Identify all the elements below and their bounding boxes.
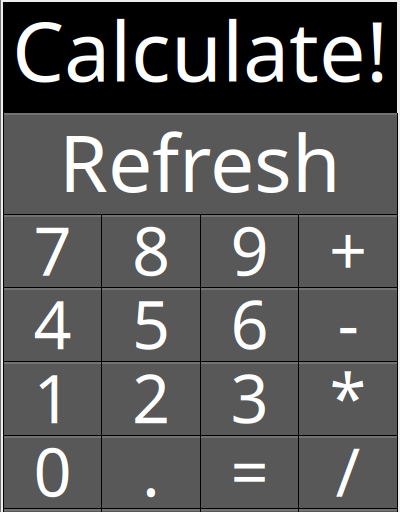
button[interactable]: 5 bbox=[102, 290, 200, 361]
staticText: / bbox=[335, 427, 360, 512]
staticText: 5 bbox=[132, 279, 170, 368]
button[interactable]: 7 bbox=[4, 217, 101, 287]
staticText: 3 bbox=[230, 353, 268, 442]
button[interactable]: = bbox=[201, 438, 298, 508]
button[interactable]: * bbox=[299, 364, 397, 435]
staticText: - bbox=[337, 279, 358, 368]
button[interactable]: - bbox=[299, 290, 397, 361]
button[interactable]: 9 bbox=[201, 217, 298, 287]
button[interactable]: 4 bbox=[4, 290, 101, 361]
button[interactable]: 0 bbox=[4, 438, 101, 508]
staticText: 4 bbox=[33, 279, 71, 368]
staticText: = bbox=[230, 427, 268, 512]
button[interactable]: / bbox=[299, 438, 397, 508]
button[interactable]: 3 bbox=[201, 364, 298, 435]
staticText: + bbox=[329, 206, 367, 294]
button[interactable]: 6 bbox=[201, 290, 298, 361]
staticText: 1 bbox=[33, 353, 71, 442]
button[interactable]: 1 bbox=[4, 364, 101, 435]
button[interactable]: 8 bbox=[102, 217, 200, 287]
staticText: 7 bbox=[33, 206, 71, 294]
staticText: Calculate! bbox=[12, 0, 388, 104]
staticText: . bbox=[142, 427, 160, 512]
button[interactable]: . bbox=[102, 438, 200, 508]
button[interactable]: + bbox=[299, 217, 397, 287]
staticText: 0 bbox=[33, 427, 71, 512]
staticText: 9 bbox=[230, 206, 268, 294]
staticText: * bbox=[329, 353, 366, 442]
staticText: 8 bbox=[132, 206, 170, 294]
staticText: 2 bbox=[132, 353, 170, 442]
button[interactable]: 2 bbox=[102, 364, 200, 435]
staticText: 6 bbox=[230, 279, 268, 368]
button[interactable]: Refresh bbox=[3, 113, 397, 214]
staticText: Refresh bbox=[59, 109, 341, 214]
